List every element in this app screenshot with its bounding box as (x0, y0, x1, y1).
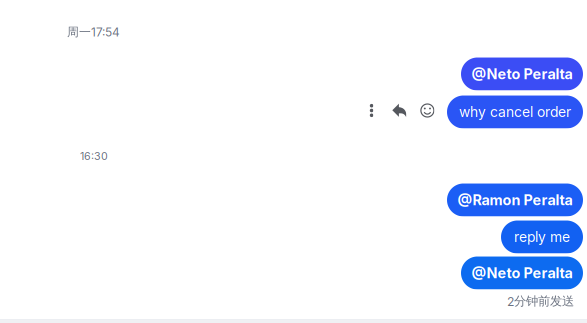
button[interactable]: @Ramon Peralta (447, 183, 583, 216)
staticText: why cancel order (459, 104, 571, 120)
button[interactable]: reply me (501, 220, 583, 253)
staticText: reply me (514, 229, 570, 245)
staticText: @Neto Peralta (471, 65, 572, 83)
staticText: @Neto Peralta (471, 264, 572, 282)
button[interactable]: why cancel order (447, 95, 583, 128)
button[interactable]: Add reaction (420, 103, 434, 117)
staticText: 2分钟前发送 (507, 293, 574, 309)
button[interactable]: @Neto Peralta (461, 256, 583, 289)
button[interactable]: Reply (392, 104, 406, 117)
staticText: 16:30 (80, 149, 108, 162)
button[interactable]: More options (370, 104, 373, 117)
staticText: @Ramon Peralta (457, 191, 572, 209)
button[interactable]: @Neto Peralta (461, 57, 583, 90)
staticText: 周一17:54 (67, 24, 120, 39)
